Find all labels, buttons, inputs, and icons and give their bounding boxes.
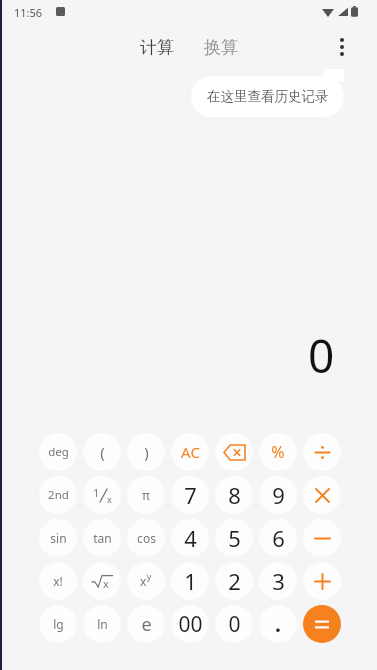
staticText: y	[147, 571, 152, 583]
staticText: deg	[48, 444, 69, 460]
button[interactable]: 换算	[196, 31, 246, 64]
staticText: sin	[50, 530, 67, 546]
button[interactable]: sin	[39, 519, 77, 557]
button[interactable]: More options	[329, 34, 355, 60]
staticText: 7	[184, 480, 197, 510]
button[interactable]: 在这里查看历史记录	[191, 76, 344, 117]
button[interactable]: x	[83, 562, 121, 600]
staticText: 换算	[204, 37, 238, 58]
button[interactable]: 00	[171, 605, 209, 643]
button[interactable]: .	[259, 605, 297, 643]
staticText: 11:56	[14, 5, 43, 20]
staticText: %	[271, 441, 285, 463]
staticText: 00	[178, 610, 203, 639]
button[interactable]: π	[127, 476, 165, 514]
button[interactable]: ln	[83, 605, 121, 643]
staticText: 3	[272, 566, 285, 596]
staticText: 0	[228, 610, 241, 639]
staticText: 1	[184, 566, 197, 596]
button[interactable]: x!	[39, 562, 77, 600]
button[interactable]: 9	[259, 476, 297, 514]
staticText: ln	[97, 616, 108, 632]
staticText: 在这里查看历史记录	[207, 88, 329, 105]
staticText: e	[141, 612, 152, 637]
button[interactable]: (	[83, 433, 121, 471]
button[interactable]: )	[127, 433, 165, 471]
button[interactable]: 0	[215, 605, 253, 643]
staticText: 9	[272, 480, 285, 510]
button[interactable]: Divide	[303, 433, 341, 471]
button[interactable]: 6	[259, 519, 297, 557]
button[interactable]: 计算	[132, 31, 182, 64]
button[interactable]: Backspace	[215, 433, 253, 471]
staticText: .	[275, 610, 281, 639]
staticText: cos	[137, 530, 156, 546]
button[interactable]: 1	[171, 562, 209, 600]
staticText: lg	[53, 616, 64, 632]
button[interactable]: 2	[215, 562, 253, 600]
button[interactable]: %	[259, 433, 297, 471]
button[interactable]: 8	[215, 476, 253, 514]
staticText: 计算	[140, 37, 174, 58]
staticText: x	[103, 576, 109, 591]
staticText: AC	[181, 442, 200, 462]
button[interactable]: x	[127, 562, 165, 600]
button[interactable]: Minus	[303, 519, 341, 557]
button[interactable]: 4	[171, 519, 209, 557]
staticText: 1	[93, 485, 100, 500]
staticText: 5	[228, 523, 241, 553]
staticText: 2	[228, 566, 241, 596]
button[interactable]: lg	[39, 605, 77, 643]
button[interactable]: 5	[215, 519, 253, 557]
button[interactable]: 3	[259, 562, 297, 600]
staticText: tan	[93, 530, 112, 546]
staticText: (	[100, 442, 105, 462]
staticText: x	[107, 493, 112, 505]
staticText: 6	[272, 523, 285, 553]
button[interactable]: 1	[83, 476, 121, 514]
button[interactable]: tan	[83, 519, 121, 557]
button[interactable]: deg	[39, 433, 77, 471]
button[interactable]: 7	[171, 476, 209, 514]
button[interactable]: Plus	[303, 562, 341, 600]
button[interactable]: AC	[171, 433, 209, 471]
staticText: 8	[228, 480, 241, 510]
button[interactable]: Multiply	[303, 476, 341, 514]
button[interactable]: e	[127, 605, 165, 643]
button[interactable]: cos	[127, 519, 165, 557]
staticText: 2nd	[48, 487, 69, 503]
button[interactable]: Equals	[303, 605, 341, 643]
staticText: x!	[53, 573, 63, 589]
staticText: )	[144, 442, 149, 462]
staticText: x	[140, 573, 147, 589]
button[interactable]: 2nd	[39, 476, 77, 514]
staticText: π	[142, 487, 150, 503]
staticText: 0	[308, 324, 335, 387]
staticText: 4	[184, 523, 197, 553]
